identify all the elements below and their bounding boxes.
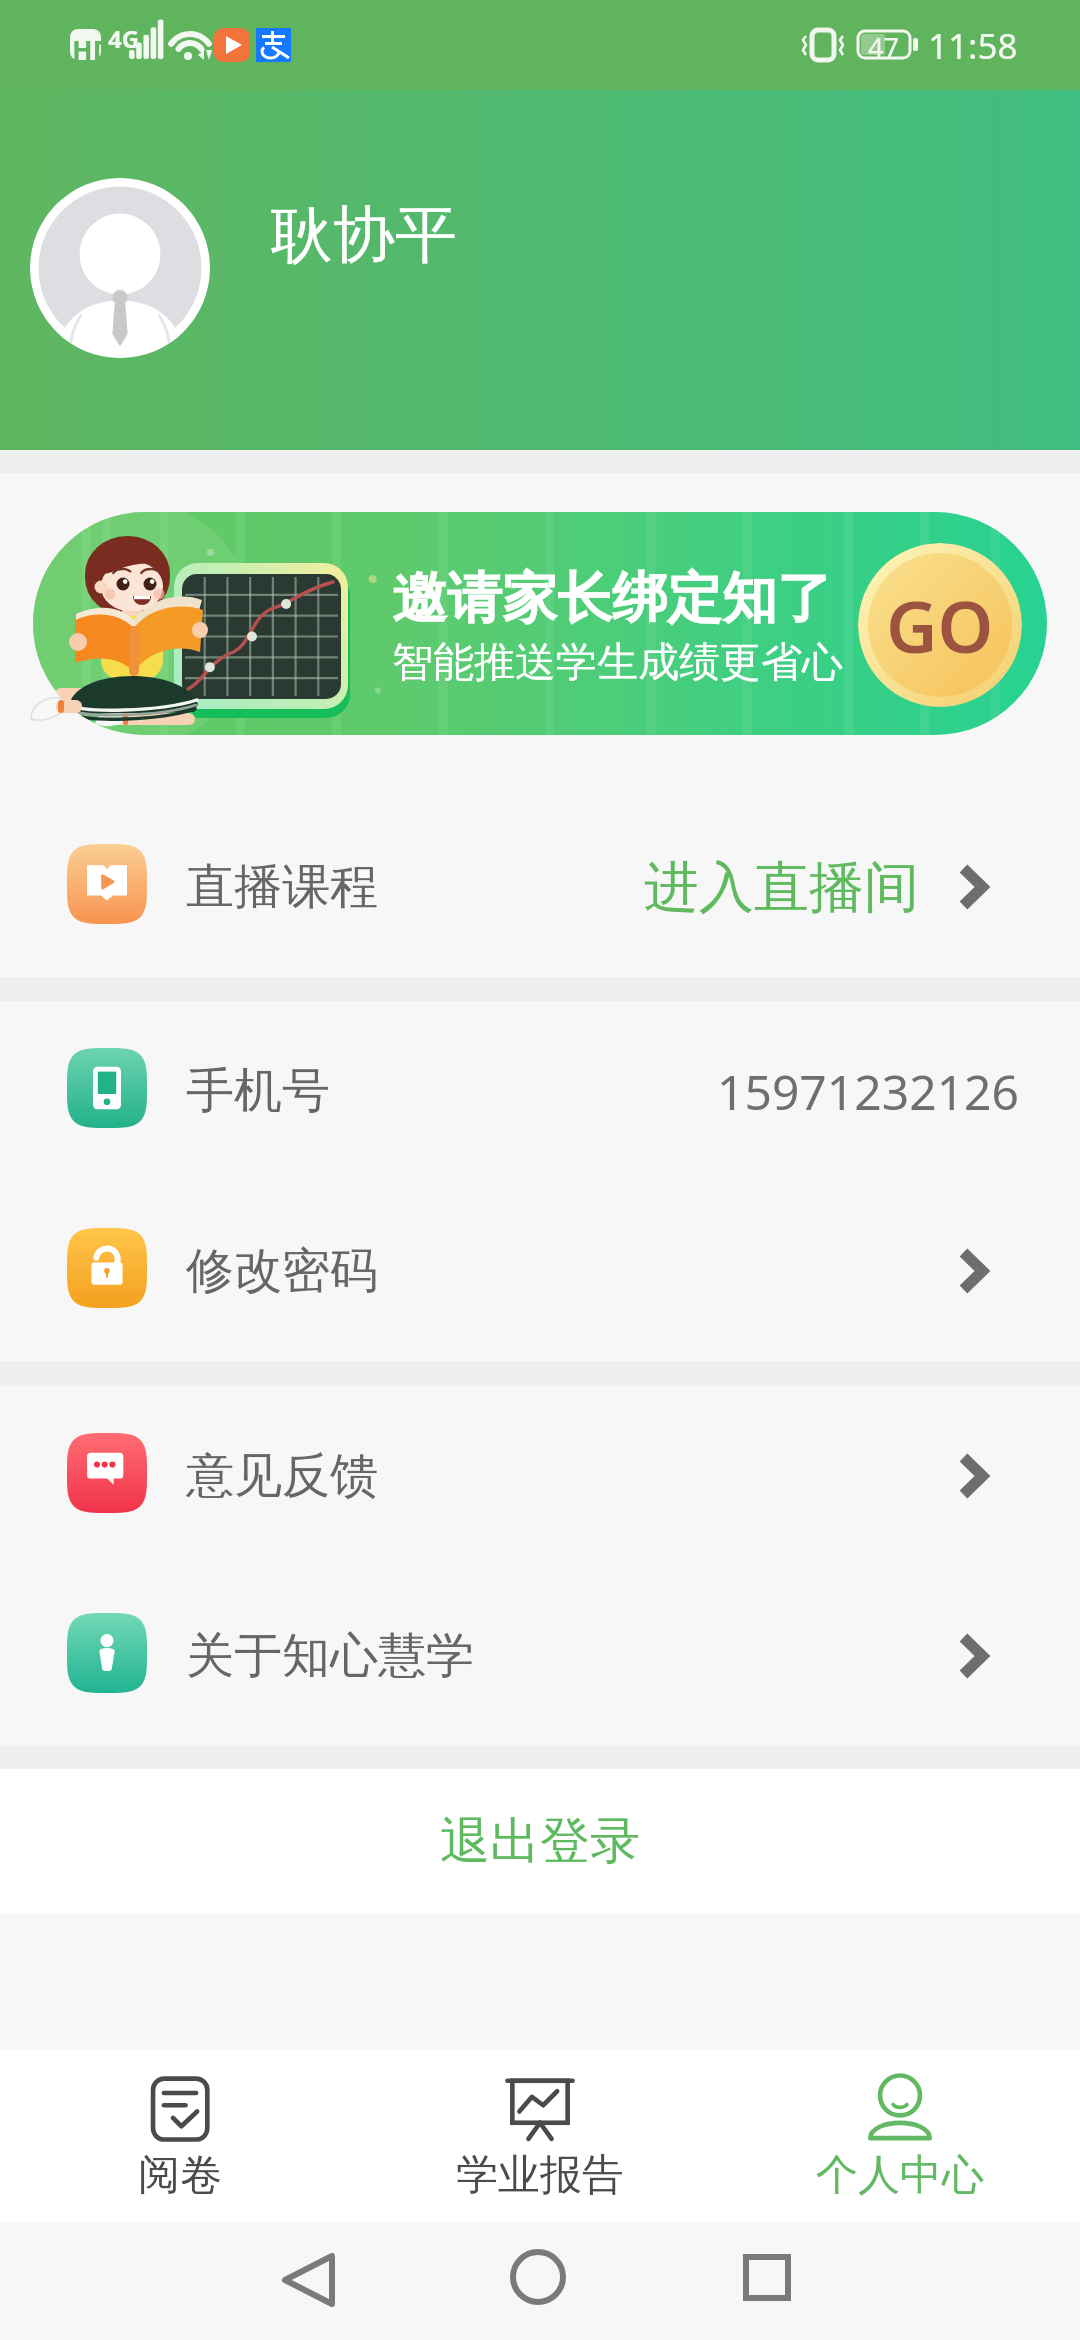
button[interactable]: 阅卷 bbox=[0, 2050, 360, 2222]
button[interactable]: 直播课程 bbox=[0, 797, 1080, 977]
staticText: 邀请家长绑定知了 bbox=[392, 564, 832, 633]
staticText: 关于知心慧学 bbox=[186, 1626, 474, 1686]
staticText: HD bbox=[72, 31, 113, 68]
button[interactable]: GO bbox=[858, 543, 1022, 707]
button[interactable]: Recents bbox=[717, 2229, 817, 2329]
button[interactable]: 学业报告 bbox=[360, 2050, 720, 2222]
button[interactable]: 手机号 bbox=[0, 1001, 1080, 1181]
staticText: 学业报告 bbox=[456, 2149, 624, 2202]
staticText: 直播课程 bbox=[186, 857, 378, 917]
staticText: 修改密码 bbox=[186, 1241, 378, 1301]
staticText: 47 bbox=[868, 29, 899, 66]
button[interactable]: 修改密码 bbox=[0, 1181, 1080, 1361]
button[interactable]: 关于知心慧学 bbox=[0, 1566, 1080, 1746]
button[interactable]: 退出登录 bbox=[0, 1769, 1080, 1914]
staticText: 个人中心 bbox=[816, 2149, 984, 2202]
staticText: 手机号 bbox=[186, 1061, 330, 1121]
staticText: 阅卷 bbox=[138, 2149, 222, 2202]
staticText: 4G bbox=[108, 22, 140, 55]
staticText: 耿协平 bbox=[271, 196, 457, 274]
button[interactable]: 意见反馈 bbox=[0, 1386, 1080, 1566]
staticText: 11:58 bbox=[928, 22, 1018, 70]
staticText: 15971232126 bbox=[717, 1059, 1020, 1124]
staticText: 退出登录 bbox=[440, 1810, 640, 1873]
button[interactable]: Home bbox=[488, 2227, 588, 2327]
staticText: GO bbox=[886, 577, 994, 674]
staticText: 意见反馈 bbox=[186, 1446, 378, 1506]
button[interactable]: Back bbox=[258, 2232, 358, 2330]
staticText: 智能推送学生成绩更省心 bbox=[392, 637, 843, 689]
staticText: 进入直播间 bbox=[644, 853, 919, 922]
button[interactable]: 邀请家长绑定知了 bbox=[33, 512, 1047, 735]
button[interactable]: 个人中心 bbox=[720, 2050, 1080, 2222]
